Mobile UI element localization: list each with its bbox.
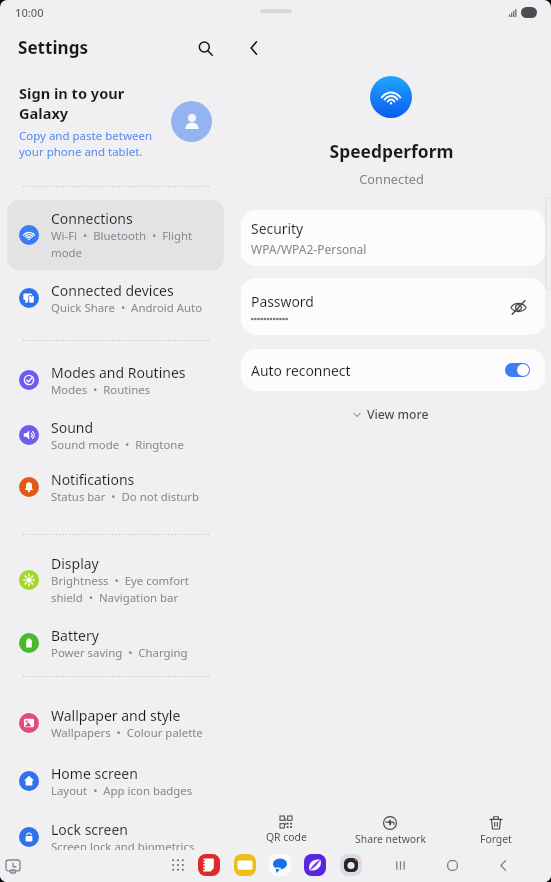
staticText: 10:00 [15,5,44,20]
staticText: Notifications [51,470,135,489]
button[interactable]: Connected devices [7,272,224,324]
button[interactable]: QR code [246,812,326,848]
button[interactable]: Show password [506,295,530,319]
button[interactable]: Wallpaper and style [7,697,224,749]
button[interactable]: Display [7,545,224,615]
staticText: Sign in to your Galaxy [19,83,125,124]
staticText: Wi-Fi • Bluetooth • Flight mode [51,228,193,261]
staticText: Forget [480,832,512,846]
button[interactable]: View more [346,403,437,426]
staticText: Quick Share • Android Auto [51,300,203,316]
button[interactable] [505,363,530,377]
staticText: Share network [355,832,426,846]
button[interactable]: Battery [7,617,224,669]
staticText: Layout • App icon badges [51,783,193,799]
staticText: QR code [266,830,307,844]
button[interactable]: Lock screen [7,811,224,863]
staticText: Battery [51,626,99,645]
staticText: Connected devices [51,281,174,300]
staticText: Modes and Routines [51,363,186,382]
button[interactable]: Connections [7,200,224,270]
button[interactable]: browser [304,854,326,876]
button[interactable]: Password [241,278,545,335]
staticText: Display [51,554,99,573]
button[interactable]: Recent apps [1,854,25,878]
button[interactable]: folder [234,854,256,876]
staticText: Speedperform [232,139,551,163]
staticText: Wallpapers • Colour palette [51,725,203,741]
button[interactable]: back [492,854,514,876]
staticText: WPA/WPA2-Personal [251,241,367,257]
staticText: Copy and paste between your phone and ta… [19,128,153,160]
button[interactable]: Sound [7,409,224,461]
staticText: Sound [51,418,94,437]
button[interactable]: Home screen [7,755,224,807]
button[interactable]: home [441,854,463,876]
staticText: Password [251,292,314,311]
staticText: Lock screen [51,820,129,839]
staticText: Screen lock and biometrics [51,839,195,855]
button[interactable]: All apps [167,854,189,876]
button[interactable]: Notifications [7,461,224,513]
staticText: Brightness • Eye comfort shield • Naviga… [51,573,189,606]
staticText: Home screen [51,764,138,783]
button[interactable]: Forget [456,812,536,850]
button[interactable]: Security [241,210,545,266]
button[interactable]: camera [340,854,362,876]
button[interactable]: Modes and Routines [7,354,224,406]
button[interactable]: Sign in to your Galaxy [0,83,232,160]
button[interactable]: Auto reconnect [241,349,545,391]
staticText: Wallpaper and style [51,706,181,725]
staticText: Settings [18,36,89,59]
button[interactable]: Search [191,34,219,62]
staticText: Auto reconnect [251,361,505,380]
button[interactable]: recents [389,854,411,876]
staticText: Connected [232,170,551,187]
staticText: Security [251,219,304,238]
staticText: Power saving • Charging [51,645,188,661]
staticText: Sound mode • Ringtone [51,437,184,453]
staticText: View more [367,406,429,423]
staticText: Connections [51,209,133,228]
button[interactable]: Back [240,34,268,62]
button[interactable]: msg [269,854,291,876]
staticText: Status bar • Do not disturb [51,489,199,505]
button[interactable]: notes [198,854,220,876]
button[interactable]: Share network [350,812,430,850]
staticText: Modes • Routines [51,382,151,398]
